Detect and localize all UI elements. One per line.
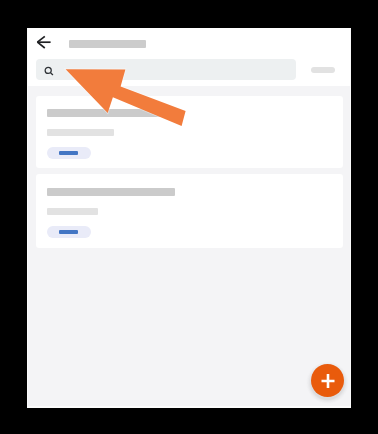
button[interactable] — [47, 147, 91, 159]
button[interactable]: Back — [30, 28, 58, 56]
button[interactable] — [47, 226, 91, 238]
button[interactable]: Add — [311, 364, 344, 397]
button[interactable] — [36, 59, 296, 80]
button[interactable] — [36, 96, 343, 168]
button[interactable] — [36, 174, 343, 248]
